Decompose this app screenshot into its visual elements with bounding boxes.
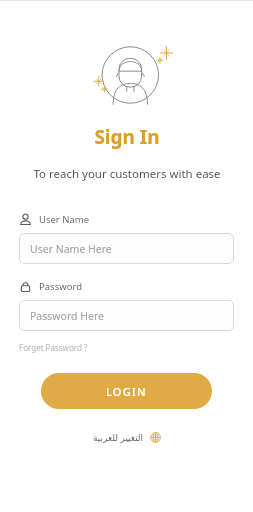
staticText: Password Here (30, 309, 104, 323)
staticText: Sign In (94, 124, 160, 150)
staticText: User Name (39, 213, 90, 226)
button[interactable]: Forget Password ? (19, 340, 88, 355)
staticText: Forget Password ? (19, 342, 88, 353)
button[interactable]: User Name Here (19, 233, 234, 264)
staticText: User Name Here (30, 242, 112, 256)
button[interactable]: LOGIN (41, 373, 212, 409)
other: Switch to Arabic (150, 432, 161, 443)
staticText: LOGIN (106, 384, 147, 399)
staticText: To reach your customers with ease (33, 166, 221, 182)
button[interactable]: التغيير للعربية (87, 428, 167, 446)
staticText: Password (39, 280, 82, 293)
staticText: التغيير للعربية (93, 431, 144, 443)
button[interactable]: Password Here (19, 300, 234, 331)
